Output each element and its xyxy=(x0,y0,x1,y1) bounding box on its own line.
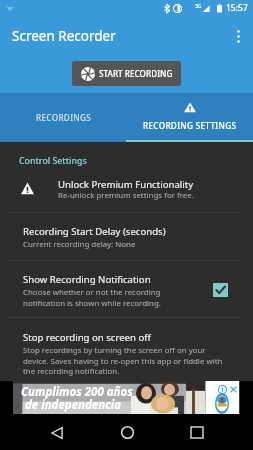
staticText: Recording Start Delay (seconds) xyxy=(23,225,166,238)
button[interactable]: Recent apps xyxy=(179,414,215,450)
staticText: RECORDING SETTINGS xyxy=(143,120,237,131)
button[interactable]: Home xyxy=(109,414,145,450)
staticText: Choose whether or not the recording noti… xyxy=(23,287,161,308)
staticText: Current recording delay: None xyxy=(23,239,136,250)
staticText: Screen Recorder xyxy=(12,27,116,45)
staticText: START RECORDING xyxy=(99,68,173,79)
button[interactable]: RECORDING SETTINGS xyxy=(126,93,253,142)
button[interactable]: More options xyxy=(223,16,253,56)
staticText: Stop recordings by turning the screen of… xyxy=(23,345,223,376)
button[interactable]: Back xyxy=(39,414,75,450)
staticText: Stop recording on screen off xyxy=(23,331,151,344)
staticText: Control Settings xyxy=(19,155,87,167)
staticText: 3G xyxy=(195,3,202,10)
button[interactable]: Stop recording on screen off xyxy=(0,317,253,381)
button[interactable]: Unlock Premium Functionality xyxy=(0,168,253,212)
staticText: Re-unlock premium settings for free. xyxy=(58,190,194,201)
button[interactable]: START RECORDING xyxy=(72,61,181,86)
button[interactable]: Show recording notification checkbox xyxy=(207,277,233,303)
staticText: de independencia xyxy=(25,397,122,413)
staticText: RECORDINGS xyxy=(36,112,92,123)
staticText: Cumplimos 200 años xyxy=(21,384,133,400)
staticText: 15:57 xyxy=(226,2,248,14)
button[interactable]: Advertisement xyxy=(0,381,253,414)
staticText: Show Recording Notification xyxy=(23,273,151,286)
button[interactable]: Recording Start Delay (seconds) xyxy=(0,212,253,260)
button[interactable]: Show Recording Notification xyxy=(0,260,253,317)
button[interactable]: RECORDINGS xyxy=(0,93,127,142)
staticText: Unlock Premium Functionality xyxy=(58,178,194,191)
